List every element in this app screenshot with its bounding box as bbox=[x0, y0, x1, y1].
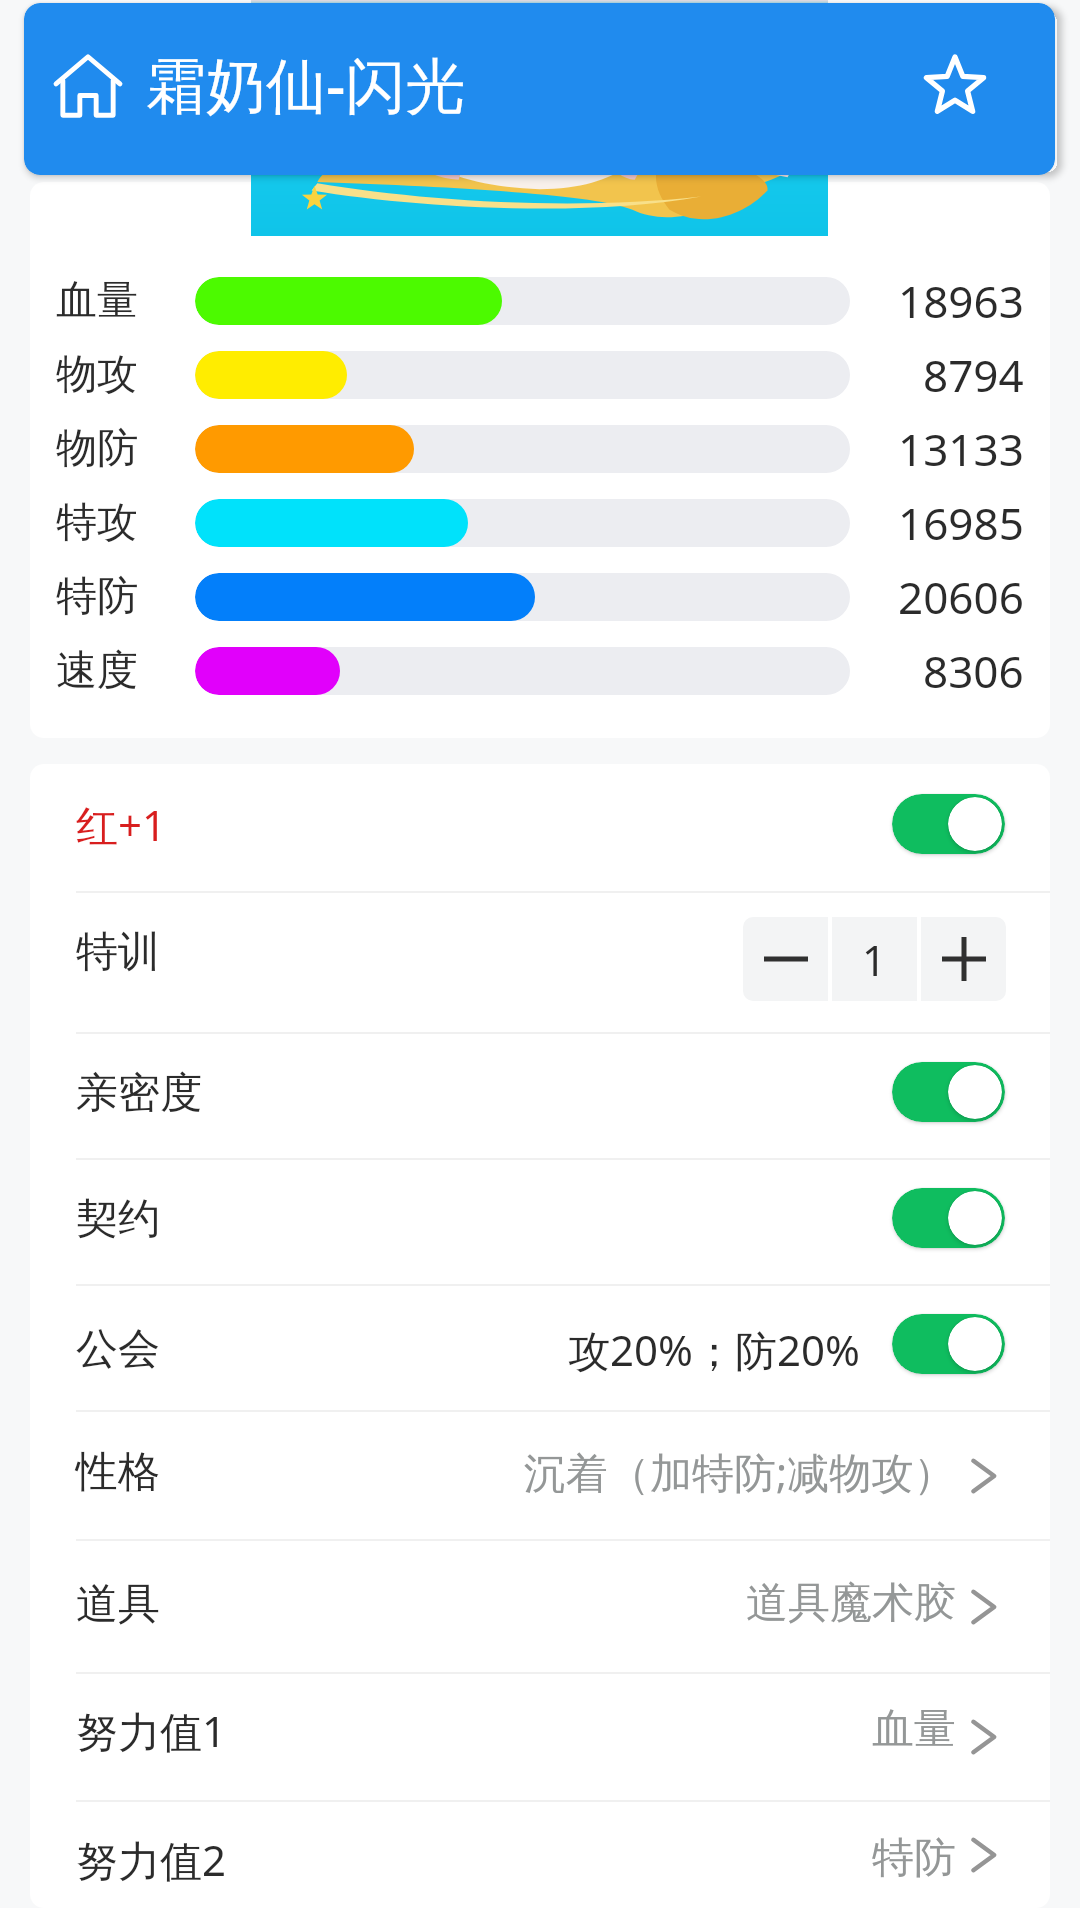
staticText: 特攻 bbox=[56, 497, 138, 549]
staticText: 18963 bbox=[898, 271, 1024, 331]
staticText: 20606 bbox=[898, 567, 1024, 627]
staticText: 物防 bbox=[56, 423, 138, 475]
button[interactable]: Favorite bbox=[909, 41, 1001, 133]
staticText: 契约 bbox=[76, 1193, 160, 1246]
button[interactable]: 亲密度 bbox=[30, 1034, 1050, 1158]
staticText: 道具 bbox=[76, 1578, 160, 1631]
button[interactable]: Home bbox=[42, 40, 134, 132]
staticText: 血量 bbox=[872, 1703, 956, 1756]
staticText: 努力值2 bbox=[76, 1831, 227, 1888]
button[interactable]: 契约 bbox=[30, 1160, 1050, 1284]
button[interactable]: 公会 bbox=[30, 1286, 1050, 1410]
staticText: 物攻 bbox=[56, 349, 138, 401]
staticText: 特防 bbox=[56, 571, 138, 623]
staticText: 速度 bbox=[56, 645, 138, 697]
staticText: 红+1 bbox=[76, 796, 167, 853]
staticText: 霜奶仙-闪光 bbox=[146, 43, 466, 125]
staticText: 努力值1 bbox=[76, 1702, 227, 1759]
button[interactable]: 红+1 bbox=[30, 764, 1050, 891]
staticText: 亲密度 bbox=[76, 1067, 202, 1120]
button[interactable]: 努力值2 bbox=[30, 1802, 1050, 1908]
staticText: 道具魔术胶 bbox=[746, 1577, 956, 1630]
button[interactable]: Decrease bbox=[743, 917, 828, 1001]
staticText: 公会 bbox=[76, 1323, 160, 1376]
button[interactable]: Increase bbox=[921, 917, 1006, 1001]
staticText: 16985 bbox=[898, 493, 1024, 553]
button[interactable]: 道具 bbox=[30, 1541, 1050, 1672]
staticText: 攻20%；防20% bbox=[568, 1321, 860, 1378]
staticText: 血量 bbox=[56, 275, 138, 327]
button[interactable]: 努力值1 bbox=[30, 1674, 1050, 1800]
staticText: 8794 bbox=[923, 345, 1024, 405]
staticText: 8306 bbox=[923, 641, 1024, 701]
staticText: 13133 bbox=[898, 419, 1024, 479]
staticText: 1 bbox=[862, 931, 887, 988]
staticText: 沉着（加特防;减物攻） bbox=[524, 1443, 956, 1500]
staticText: 性格 bbox=[76, 1446, 160, 1499]
button[interactable]: 性格 bbox=[30, 1412, 1050, 1539]
staticText: 特训 bbox=[76, 926, 160, 979]
staticText: 特防 bbox=[872, 1832, 956, 1885]
